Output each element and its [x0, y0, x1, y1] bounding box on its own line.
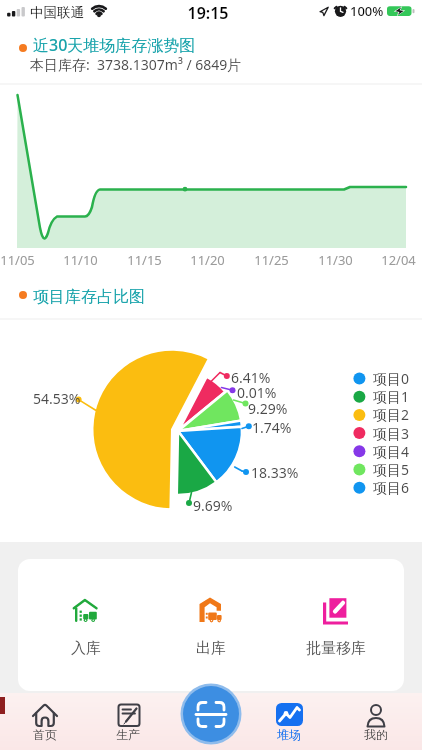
staticText: 11/15: [127, 251, 162, 269]
staticText: 近30天堆场库存涨势图: [33, 34, 196, 56]
staticText: 项目6: [373, 478, 410, 497]
staticText: 11/05: [0, 251, 35, 269]
staticText: 100%: [350, 2, 384, 20]
staticText: 6.41%: [231, 368, 271, 387]
staticText: 项目库存占比图: [33, 287, 145, 307]
staticText: 0.01%: [237, 383, 277, 402]
staticText: 入库: [71, 639, 101, 658]
staticText: 12/04: [381, 251, 416, 269]
button[interactable]: [17, 693, 73, 750]
staticText: 本日库存: 3738.1307m³ / 6849片: [30, 55, 242, 74]
staticText: 11/10: [63, 251, 98, 269]
button[interactable]: [348, 693, 404, 750]
staticText: 1.74%: [252, 418, 292, 437]
staticText: 堆场: [277, 727, 301, 742]
staticText: 9.29%: [248, 399, 288, 418]
staticText: 出库: [196, 639, 226, 658]
button[interactable]: [181, 684, 241, 746]
staticText: 中国联通: [30, 4, 84, 21]
staticText: 我的: [364, 727, 388, 742]
button[interactable]: [100, 693, 156, 750]
button[interactable]: [182, 580, 242, 652]
button[interactable]: [261, 693, 317, 750]
staticText: 11/20: [190, 251, 225, 269]
staticText: 首页: [33, 727, 57, 742]
staticText: 9.69%: [193, 496, 233, 515]
staticText: 11/25: [254, 251, 289, 269]
staticText: 项目1: [373, 387, 410, 406]
staticText: 生产: [116, 727, 140, 742]
staticText: 11/30: [318, 251, 353, 269]
staticText: 项目5: [373, 460, 410, 479]
button[interactable]: [62, 580, 122, 652]
staticText: 19:15: [187, 2, 229, 24]
staticText: 18.33%: [251, 463, 299, 482]
staticText: 项目2: [373, 405, 410, 424]
staticText: 批量移库: [306, 639, 366, 658]
staticText: 54.53%: [33, 389, 81, 408]
staticText: 项目0: [373, 369, 410, 388]
staticText: 项目4: [373, 442, 410, 461]
button[interactable]: [295, 580, 371, 652]
staticText: 项目3: [373, 424, 410, 443]
